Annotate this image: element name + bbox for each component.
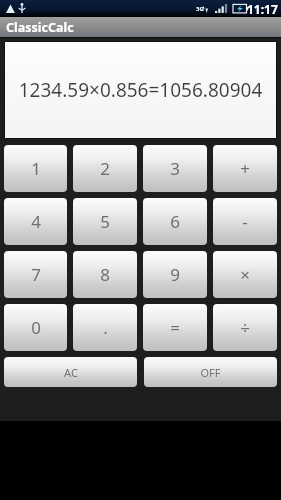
staticText: 1: [31, 157, 41, 180]
staticText: 11:17: [247, 1, 278, 17]
button[interactable]: ×: [213, 251, 277, 298]
staticText: 2: [100, 157, 110, 180]
button[interactable]: 6: [143, 198, 207, 245]
button[interactable]: +: [213, 145, 277, 192]
staticText: ÷: [240, 316, 250, 339]
staticText: 7: [31, 263, 41, 286]
button[interactable]: AC: [4, 357, 137, 387]
button[interactable]: 3: [143, 145, 207, 192]
button[interactable]: 8: [73, 251, 137, 298]
staticText: .: [103, 316, 108, 339]
staticText: -: [242, 210, 248, 233]
button[interactable]: 4: [4, 198, 67, 245]
staticText: 9: [170, 263, 180, 286]
staticText: 4: [31, 210, 41, 233]
staticText: 0: [31, 316, 41, 339]
button[interactable]: 9: [143, 251, 207, 298]
button[interactable]: ÷: [213, 304, 277, 351]
staticText: ClassicCalc: [6, 19, 74, 36]
staticText: 3G: [196, 5, 204, 13]
button[interactable]: -: [213, 198, 277, 245]
button[interactable]: 2: [73, 145, 137, 192]
staticText: 5: [100, 210, 110, 233]
staticText: ×: [240, 263, 250, 286]
button[interactable]: OFF: [144, 357, 277, 387]
staticText: +: [240, 157, 250, 180]
button[interactable]: =: [143, 304, 207, 351]
staticText: AC: [64, 365, 78, 380]
button[interactable]: 1: [4, 145, 67, 192]
staticText: =: [170, 316, 180, 339]
staticText: 6: [170, 210, 180, 233]
button[interactable]: 0: [4, 304, 67, 351]
staticText: OFF: [200, 365, 221, 380]
button[interactable]: 5: [73, 198, 137, 245]
staticText: 8: [100, 263, 110, 286]
staticText: 3: [170, 157, 180, 180]
button[interactable]: .: [73, 304, 137, 351]
button[interactable]: 7: [4, 251, 67, 298]
staticText: 1234.59×0.856=1056.80904: [7, 77, 274, 103]
